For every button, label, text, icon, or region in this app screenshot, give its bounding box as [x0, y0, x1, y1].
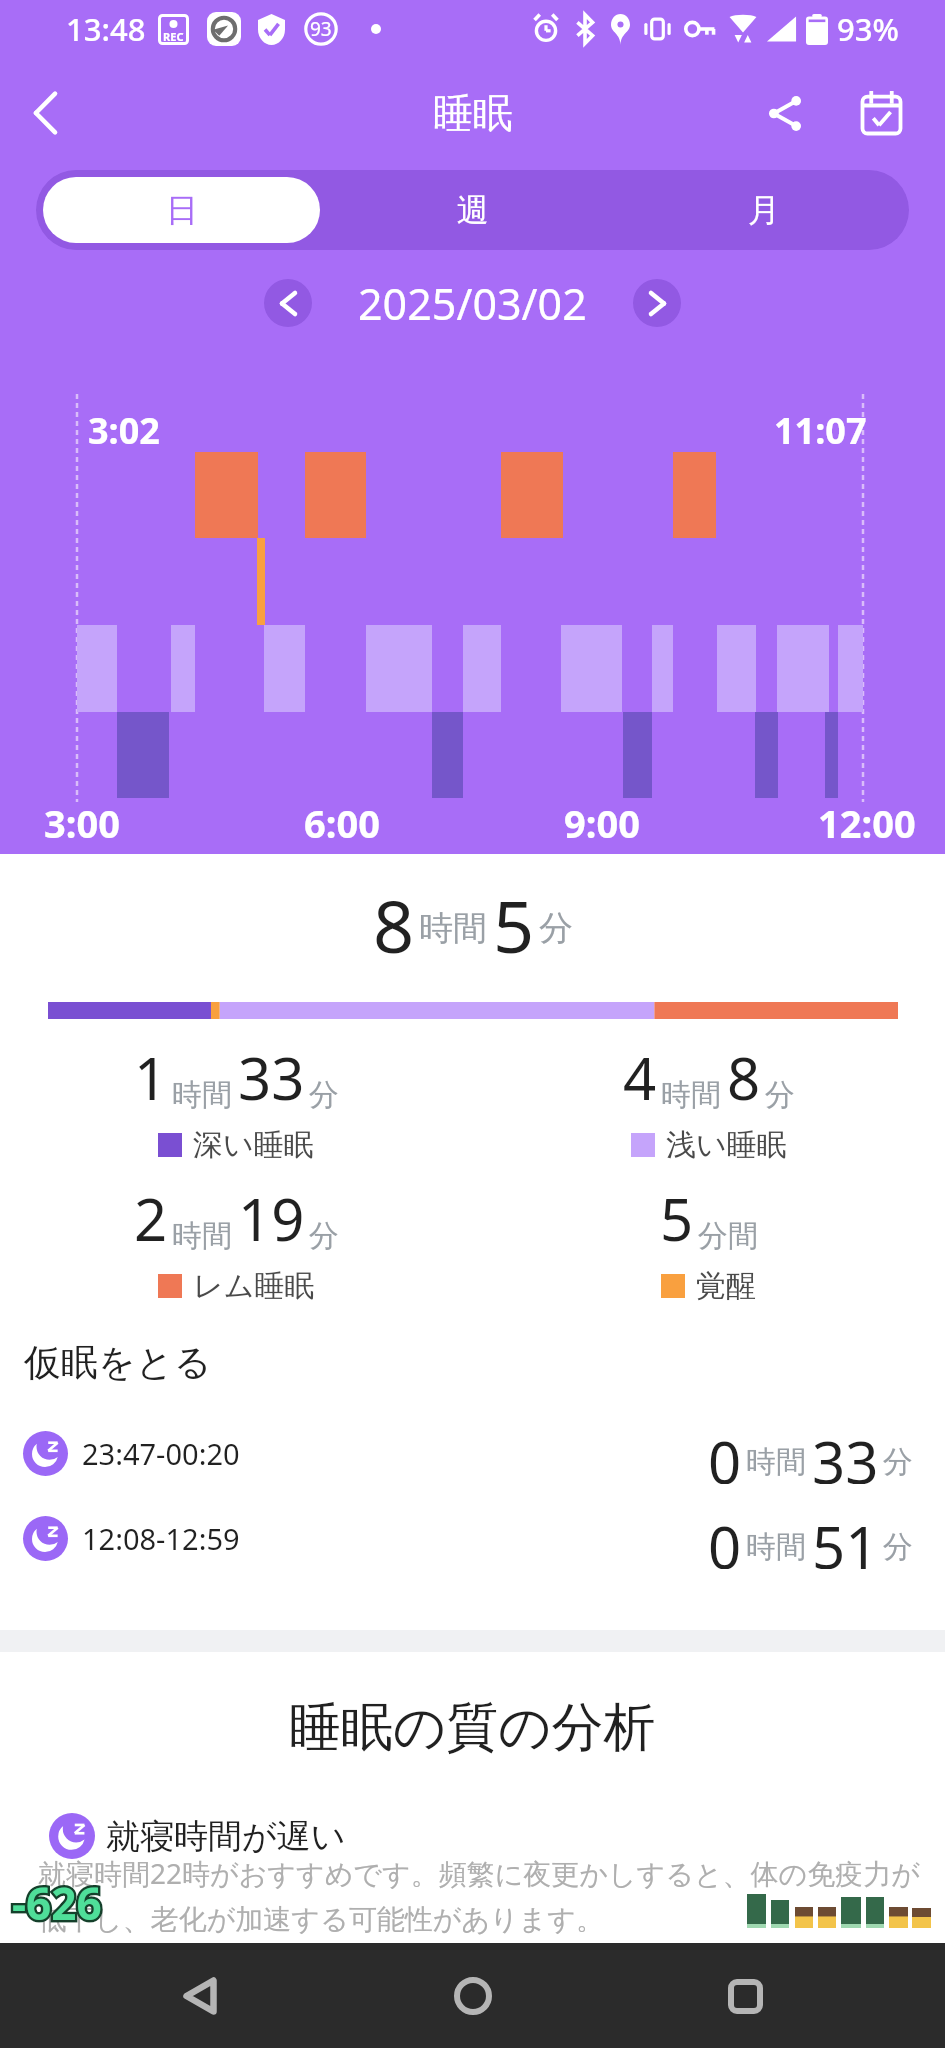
staticText: 12:00: [818, 797, 916, 849]
staticText: 分: [539, 907, 573, 950]
staticText: 11:07: [774, 406, 867, 455]
button[interactable]: 12:08-12:59: [0, 1507, 945, 1569]
staticText: 分: [309, 1217, 339, 1255]
staticText: 23:47-00:20: [82, 1434, 240, 1473]
staticText: 93: [310, 16, 332, 42]
staticText: -626: [12, 1873, 102, 1933]
staticText: レム睡眠: [193, 1267, 315, 1305]
button[interactable]: Home: [428, 1951, 518, 2041]
button[interactable]: Calendar: [844, 76, 918, 150]
staticText: 就寝時間22時がおすすめです。頻繁に夜更かしすると、体の免疫力が 低下し、老化が…: [38, 1854, 920, 1937]
staticText: 33: [238, 1038, 305, 1117]
button[interactable]: 月: [618, 170, 909, 250]
staticText: 5: [493, 876, 535, 954]
staticText: 19: [238, 1179, 305, 1258]
staticText: 分: [883, 1443, 913, 1481]
staticText: 時間: [661, 1076, 721, 1114]
staticText: 睡眠の質の分析: [289, 1695, 656, 1761]
button[interactable]: Recents: [700, 1951, 790, 2041]
staticText: 1: [134, 1038, 168, 1117]
staticText: 分間: [698, 1217, 758, 1255]
staticText: 5: [660, 1179, 694, 1258]
staticText: 13:48: [66, 8, 146, 50]
button[interactable]: Back: [155, 1951, 245, 2041]
staticText: 月: [748, 190, 780, 230]
staticText: 時間: [419, 907, 487, 950]
button[interactable]: 23:47-00:20: [0, 1422, 945, 1484]
staticText: 3:02: [88, 406, 160, 455]
staticText: 就寝時間が遅い: [106, 1815, 346, 1858]
staticText: 2: [134, 1179, 168, 1258]
staticText: 3:00: [44, 797, 120, 849]
staticText: 時間: [172, 1217, 232, 1255]
button[interactable]: Share: [748, 76, 822, 150]
staticText: 週: [457, 190, 489, 230]
staticText: 覚醒: [696, 1267, 756, 1305]
staticText: 仮眠をとる: [24, 1339, 212, 1386]
button[interactable]: Next day: [633, 279, 681, 327]
staticText: 4: [623, 1038, 657, 1117]
staticText: 0: [708, 1422, 742, 1484]
staticText: 時間: [172, 1076, 232, 1114]
staticText: REC: [163, 29, 184, 44]
staticText: 8: [373, 876, 415, 954]
staticText: 51: [812, 1507, 879, 1569]
staticText: 分: [309, 1076, 339, 1114]
staticText: 日: [166, 190, 198, 230]
staticText: 2025/03/02: [358, 274, 587, 333]
staticText: 8: [727, 1038, 761, 1117]
staticText: 9:00: [564, 797, 640, 849]
staticText: 睡眠: [433, 88, 513, 138]
staticText: 浅い睡眠: [666, 1126, 787, 1164]
staticText: -626: [12, 1873, 102, 1933]
staticText: 分: [765, 1076, 795, 1114]
staticText: 6:00: [304, 797, 380, 849]
staticText: 分: [883, 1528, 913, 1566]
staticText: 深い睡眠: [193, 1126, 314, 1164]
staticText: 93%: [837, 8, 899, 50]
button[interactable]: 日: [43, 177, 320, 243]
button[interactable]: 週: [327, 170, 618, 250]
staticText: 33: [812, 1422, 879, 1484]
staticText: 時間: [746, 1528, 806, 1566]
staticText: 時間: [746, 1443, 806, 1481]
staticText: 12:08-12:59: [82, 1519, 240, 1558]
staticText: 0: [708, 1507, 742, 1569]
button[interactable]: Previous day: [264, 279, 312, 327]
button[interactable]: Back: [10, 78, 80, 148]
